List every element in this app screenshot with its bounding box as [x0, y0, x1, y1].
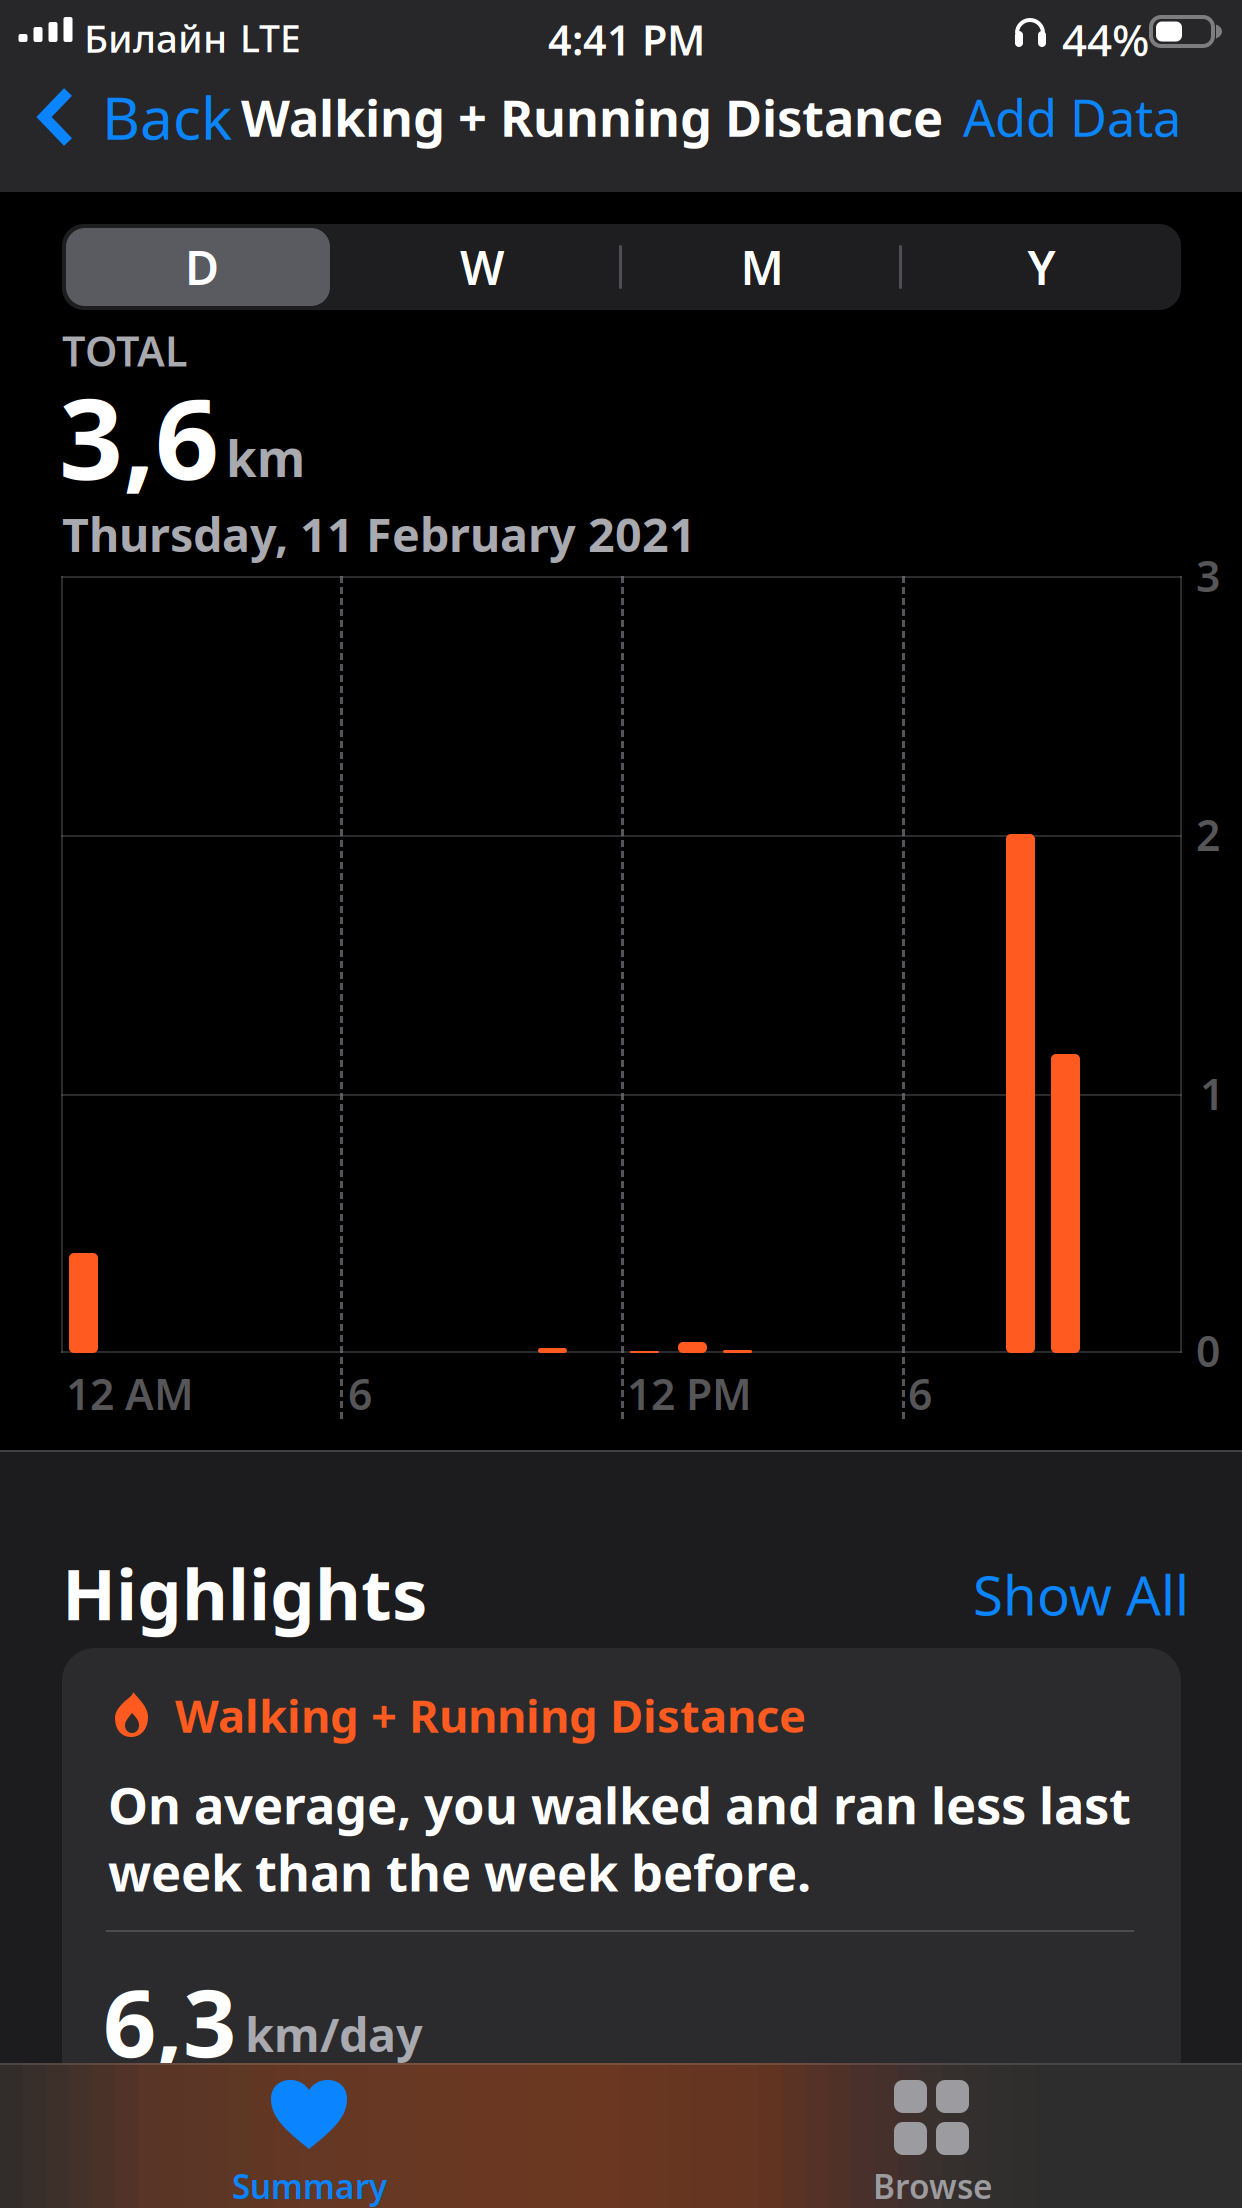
staticText: 3,6	[59, 362, 219, 511]
button[interactable]: Show All	[961, 1546, 1201, 1643]
staticText: 3	[1196, 547, 1220, 604]
button[interactable]: Summary	[0, 2063, 621, 2208]
staticText: 0	[1196, 1322, 1220, 1379]
staticText: km/day	[245, 2003, 423, 2065]
staticText: Show All	[973, 1558, 1189, 1631]
staticText: 2	[1196, 806, 1220, 863]
button[interactable]: Back	[0, 62, 240, 172]
staticText: Y	[1027, 236, 1055, 298]
staticText: LTE	[240, 13, 301, 63]
staticText: 12 AM	[66, 1365, 194, 1422]
staticText: 6	[908, 1365, 932, 1422]
staticText: Browse	[873, 2164, 993, 2208]
staticText: D	[185, 236, 219, 298]
staticText: Walking + Running Distance	[241, 83, 943, 151]
staticText: 44%	[1062, 10, 1149, 68]
staticText: 6	[348, 1365, 372, 1422]
staticText: On average, you walked and ran less last…	[108, 1771, 1131, 1906]
staticText: 1	[1200, 1065, 1224, 1122]
staticText: Билайн	[84, 12, 227, 63]
button[interactable]: Y	[902, 224, 1181, 310]
staticText: M	[740, 236, 783, 298]
staticText: Summary	[232, 2164, 387, 2208]
staticText: Thursday, 11 February 2021	[62, 503, 696, 565]
staticText: km	[226, 425, 305, 490]
staticText: W	[460, 236, 504, 298]
staticText: 6,3	[103, 1959, 236, 2083]
button[interactable]: Add Data	[955, 62, 1242, 172]
button[interactable]: W	[342, 224, 622, 310]
button[interactable]: Browse	[621, 2063, 1242, 2208]
staticText: 12 PM	[627, 1365, 752, 1422]
staticText: Walking + Running Distance	[175, 1685, 806, 1745]
staticText: Add Data	[963, 83, 1181, 151]
button[interactable]: D	[62, 224, 342, 310]
staticText: Highlights	[62, 1546, 427, 1640]
staticText: TOTAL	[62, 323, 188, 378]
button[interactable]: M	[622, 224, 902, 310]
staticText: Back	[102, 78, 232, 156]
staticText: 4:41 PM	[548, 12, 705, 67]
